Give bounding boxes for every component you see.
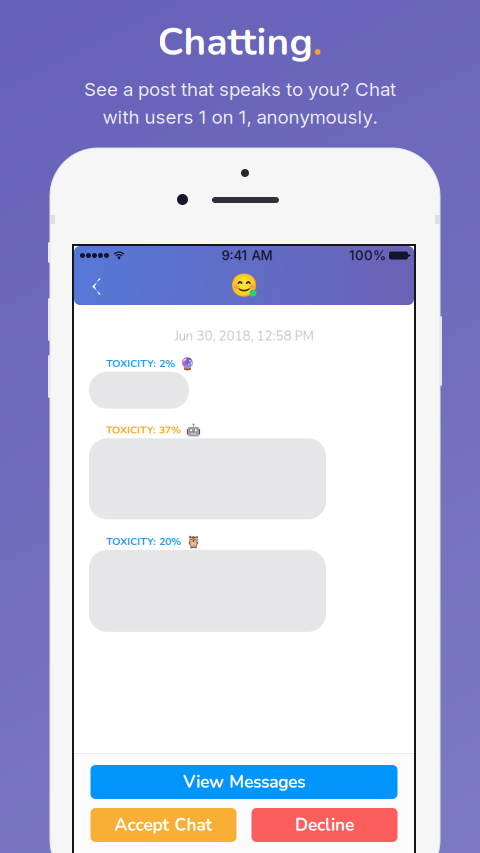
staticText: TOXICITY: 20% [106,534,181,549]
staticText: with users 1 on 1, anonymously. [102,106,377,128]
staticText: . [312,16,322,68]
staticText: TOXICITY: 2% [106,356,175,371]
button[interactable]: Accept Chat [90,808,236,842]
staticText: 100% [349,247,386,263]
staticText: TOXICITY: 37% [106,423,181,437]
button[interactable]: Back [80,268,112,305]
staticText: 🤖 [186,423,201,437]
staticText: Chatting [157,16,312,68]
button[interactable]: Decline [251,808,397,842]
staticText: Decline [295,813,354,837]
staticText: 🦉 [186,534,201,549]
button[interactable]: View Messages [90,765,397,799]
staticText: Jun 30, 2018, 12:58 PM [174,327,313,345]
staticText: View Messages [183,770,305,794]
staticText: 😊 [230,272,258,298]
staticText: See a post that speaks to you? Chat [84,78,396,101]
staticText: Accept Chat [114,813,212,837]
staticText: 9:41 AM [221,247,272,263]
staticText: 🔮 [180,356,195,370]
